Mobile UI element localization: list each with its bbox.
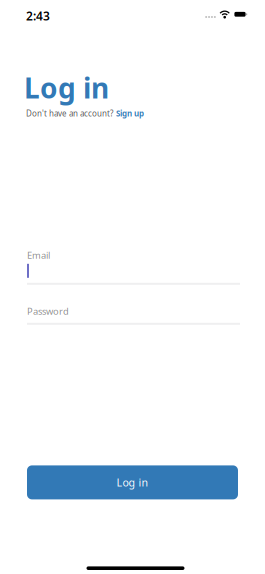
staticText: 2:43 (26, 8, 50, 24)
staticText: Sign up (116, 108, 144, 119)
button[interactable]: Don't have an account? (0, 107, 144, 120)
button[interactable]: Log in (27, 465, 238, 499)
staticText: Password (27, 305, 69, 317)
staticText: Email (27, 249, 50, 261)
staticText: Don't have an account? (26, 108, 113, 119)
staticText: Log in (24, 69, 109, 106)
staticText: Log in (116, 475, 148, 489)
button[interactable]: Password (0, 305, 240, 325)
button[interactable]: Email (0, 249, 240, 285)
